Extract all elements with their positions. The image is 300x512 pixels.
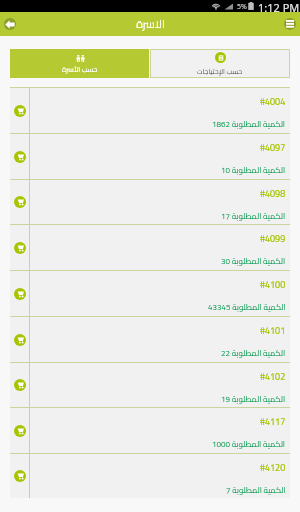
button[interactable]: حسب الأسرة <box>10 49 149 78</box>
staticText: 43345 الكمية المطلوبة <box>208 300 286 315</box>
button[interactable]: Menu <box>284 18 296 30</box>
staticText: #4120 <box>260 459 286 476</box>
staticText: #4101 <box>260 322 286 339</box>
staticText: 30 الكمية المطلوبة <box>221 254 286 269</box>
button[interactable]: حسب الإحتياجات <box>150 49 290 78</box>
staticText: #4117 <box>260 413 286 430</box>
staticText: 1000 الكمية المطلوبة <box>212 437 286 452</box>
button[interactable]: #4004 <box>10 88 290 133</box>
staticText: #4100 <box>260 276 286 293</box>
staticText: 10 الكمية المطلوبة <box>221 163 286 178</box>
button[interactable]: #4099 <box>10 225 290 270</box>
button[interactable]: #4102 <box>10 363 290 407</box>
staticText: #4097 <box>260 139 286 156</box>
staticText: الاسرة <box>136 14 165 35</box>
staticText: حسب الإحتياجات <box>197 65 243 78</box>
button[interactable]: Back <box>4 18 16 30</box>
staticText: #4102 <box>260 368 286 385</box>
staticText: 1:12 PM <box>258 0 300 12</box>
staticText: #4098 <box>260 185 286 202</box>
staticText: 7 الكمية المطلوبة <box>226 483 286 498</box>
button[interactable]: #4120 <box>10 454 290 498</box>
staticText: 5% <box>237 2 247 12</box>
staticText: 19 الكمية المطلوبة <box>221 392 286 407</box>
button[interactable]: #4100 <box>10 271 290 316</box>
button[interactable]: #4098 <box>10 180 290 224</box>
staticText: 22 الكمية المطلوبة <box>221 346 286 361</box>
staticText: #4004 <box>260 93 286 110</box>
button[interactable]: #4117 <box>10 408 290 453</box>
button[interactable]: #4097 <box>10 134 290 179</box>
button[interactable]: #4101 <box>10 317 290 362</box>
staticText: #4099 <box>260 230 286 247</box>
staticText: حسب الأسرة <box>62 63 98 76</box>
staticText: 1862 الكمية المطلوبة <box>212 117 286 132</box>
staticText: 17 الكمية المطلوبة <box>221 209 286 224</box>
